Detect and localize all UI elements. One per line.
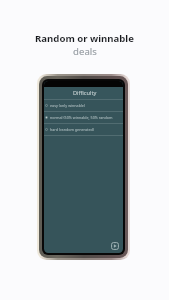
- button[interactable]: hard (random generated): [44, 124, 123, 135]
- staticText: Difficulty: [73, 89, 97, 97]
- staticText: hard (random generated): [50, 127, 94, 132]
- other: Google Play: [111, 242, 119, 250]
- staticText: normal (50% winnable, 50% random games): [50, 115, 120, 120]
- button[interactable]: normal (50% winnable, 50% random games): [44, 112, 123, 123]
- staticText: Random or winnable: [35, 32, 134, 45]
- button[interactable]: easy (only winnable): [44, 100, 123, 111]
- staticText: deals: [73, 45, 97, 58]
- staticText: easy (only winnable): [50, 103, 86, 108]
